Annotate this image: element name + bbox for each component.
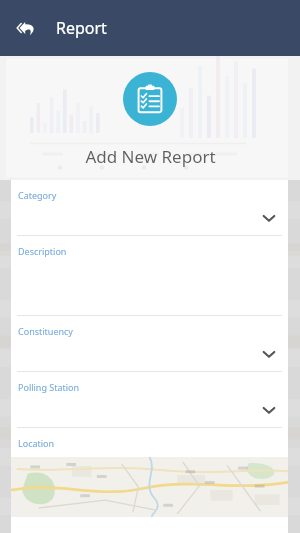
staticText: Constituency [18,325,73,337]
button[interactable]: Description [11,236,288,315]
button[interactable]: Constituency [11,316,288,371]
button[interactable]: Back [6,8,46,48]
button[interactable]: Polling Station [11,372,288,427]
staticText: Add New Report [85,145,216,168]
staticText: Location [18,437,55,449]
button[interactable]: Category [11,180,288,235]
staticText: Description [18,245,67,257]
staticText: Category [18,189,57,201]
button[interactable]: Location [11,428,288,517]
staticText: Polling Station [18,381,80,393]
staticText: Report [56,17,107,39]
button[interactable]: Map location [11,457,288,517]
